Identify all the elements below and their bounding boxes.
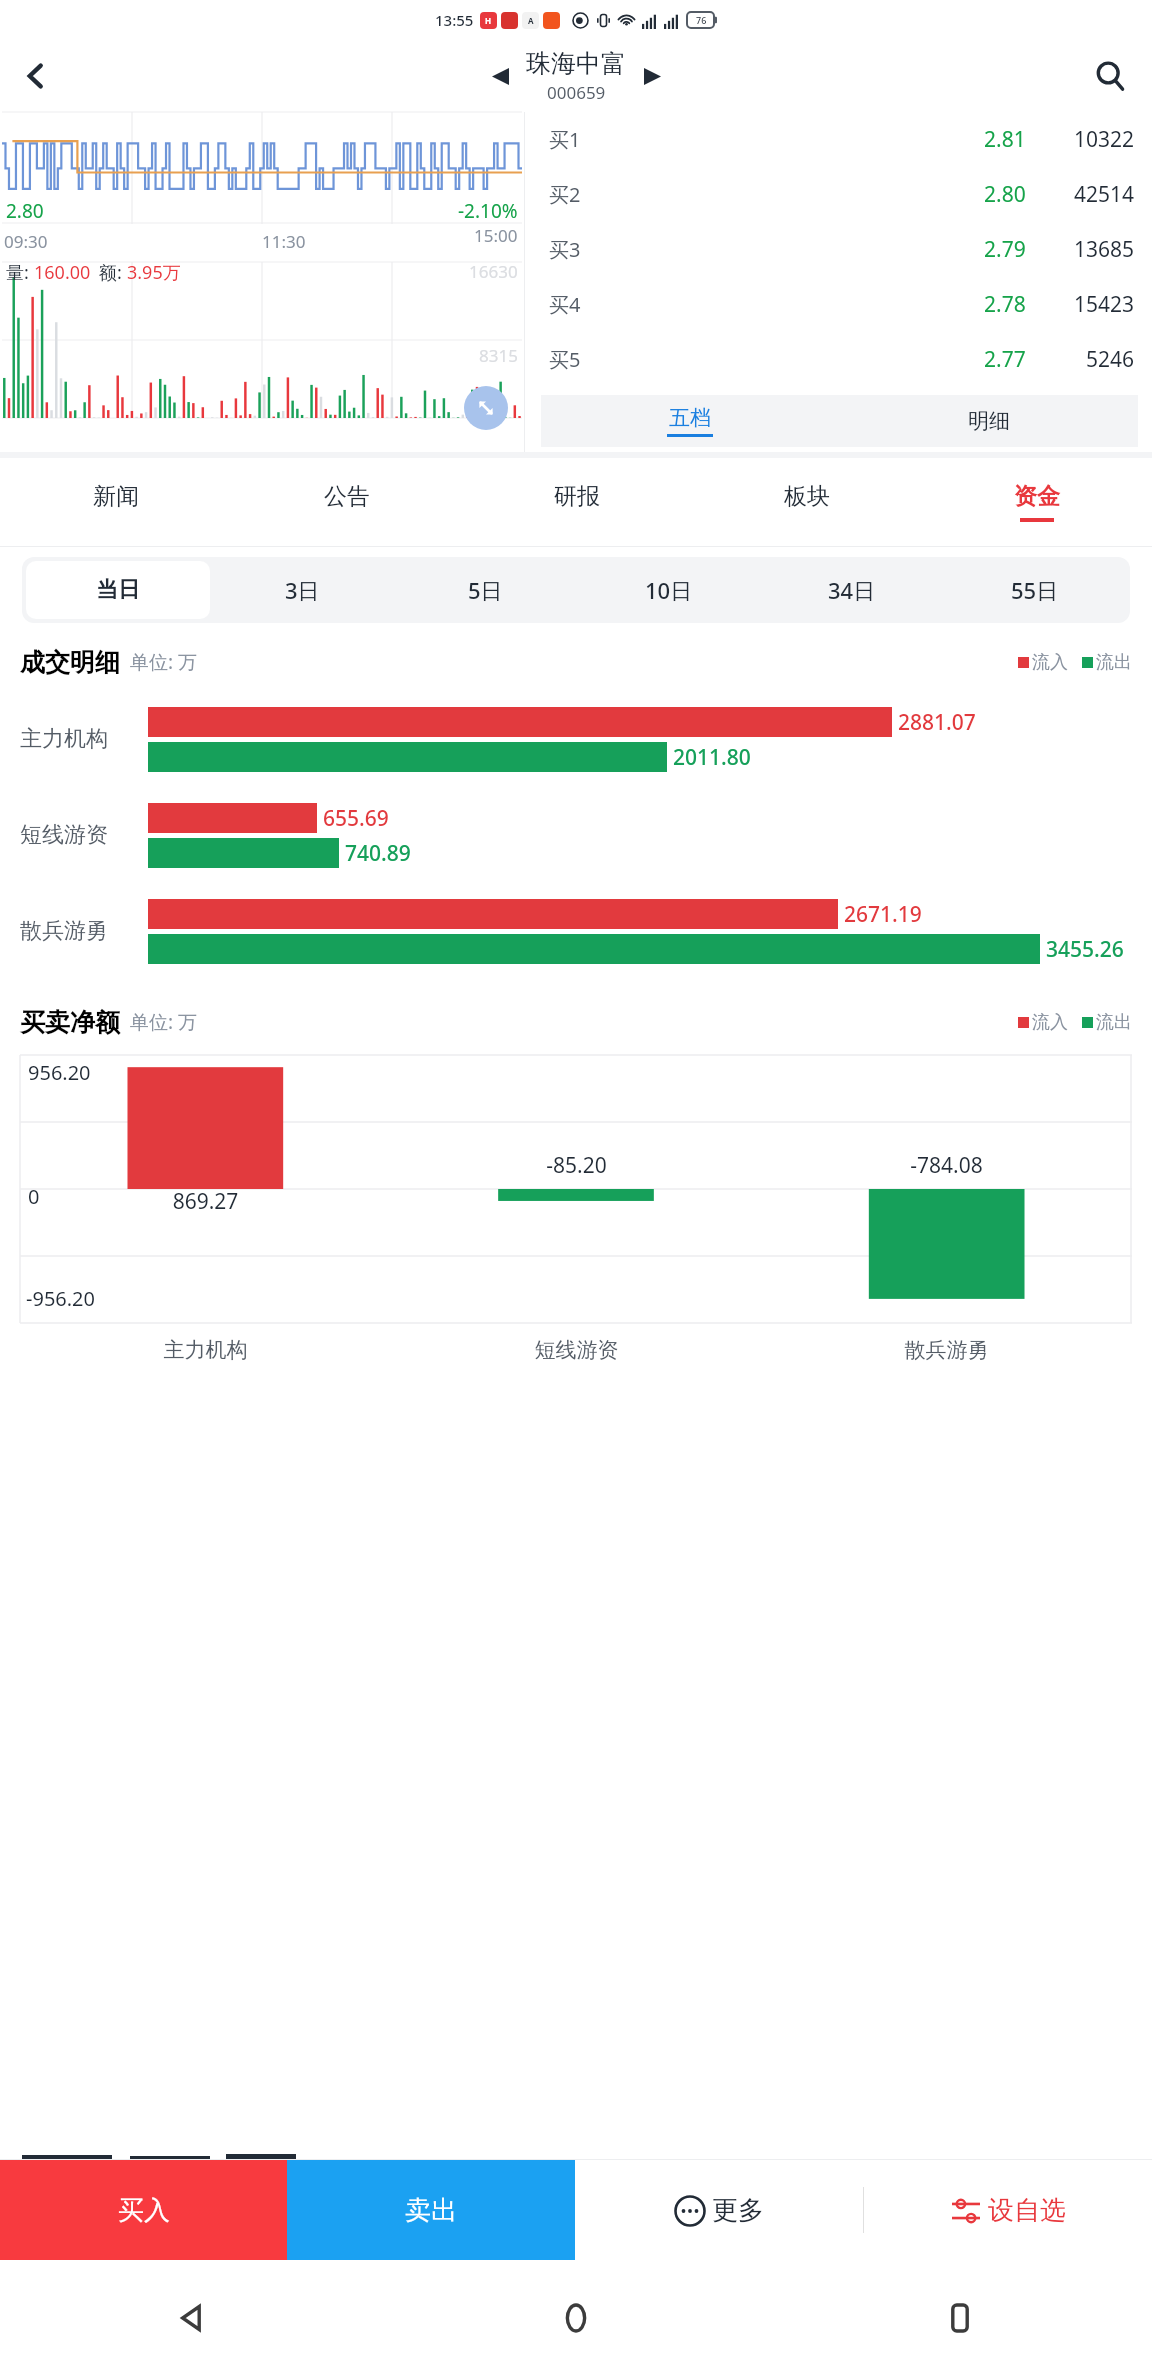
button[interactable]: Home	[384, 2260, 768, 2376]
button[interactable]: Expand chart	[464, 386, 508, 430]
staticText: 明细	[968, 408, 1010, 434]
staticText: 买5	[549, 346, 581, 373]
button[interactable]: 公告	[231, 458, 462, 546]
staticText: 量:	[6, 260, 34, 285]
staticText: 研报	[554, 482, 600, 511]
staticText: 2.80	[984, 180, 1026, 209]
staticText: 5日	[468, 575, 503, 605]
staticText: 000659	[547, 81, 606, 104]
staticText: 买1	[549, 126, 581, 153]
staticText: 买2	[549, 181, 581, 208]
staticText: 869.27	[20, 1187, 391, 1216]
button[interactable]: 短线游资	[20, 789, 1136, 881]
staticText: 成交明细	[20, 647, 120, 678]
button[interactable]: 3日	[210, 561, 394, 619]
staticText: 55日	[1011, 575, 1059, 605]
staticText: 2881.07	[898, 708, 976, 737]
staticText: 10322	[1048, 125, 1134, 154]
button[interactable]: 当日	[26, 561, 210, 619]
staticText: 0	[28, 1183, 40, 1210]
staticText: 主力机构	[20, 1337, 391, 1363]
staticText: 更多	[712, 2194, 764, 2227]
staticText: 公告	[324, 482, 370, 511]
staticText: 740.89	[345, 839, 411, 868]
button[interactable]: 新闻	[0, 458, 231, 546]
staticText: 15423	[1048, 290, 1134, 319]
button[interactable]: Back	[0, 2260, 384, 2376]
staticText: 2.79	[984, 235, 1026, 264]
button[interactable]: 买2	[549, 167, 1134, 222]
button[interactable]: Recents	[768, 2260, 1152, 2376]
staticText: 09:30	[4, 230, 48, 253]
button[interactable]: 买入	[0, 2160, 287, 2260]
button[interactable]: 买5	[549, 332, 1134, 387]
button[interactable]: 五档	[541, 395, 839, 447]
button[interactable]: 明细	[839, 395, 1138, 447]
staticText: -2.10%	[458, 198, 518, 224]
button[interactable]: 散兵游勇	[20, 885, 1136, 977]
button[interactable]: Next stock	[630, 54, 674, 98]
button[interactable]: 板块	[692, 458, 922, 546]
button[interactable]: 更多	[575, 2160, 863, 2260]
button[interactable]: Search	[1082, 48, 1138, 104]
staticText: 2.81	[984, 125, 1026, 154]
button[interactable]: 资金	[922, 458, 1152, 546]
staticText: 额:	[99, 260, 127, 285]
staticText: 买4	[549, 291, 581, 318]
button[interactable]: 34日	[760, 561, 943, 619]
button[interactable]: 10日	[577, 561, 760, 619]
staticText: 34日	[828, 575, 876, 605]
button[interactable]: 买4	[549, 277, 1134, 332]
staticText: 买入	[118, 2194, 170, 2227]
staticText: 珠海中富	[526, 48, 626, 79]
staticText: 2011.80	[673, 743, 751, 772]
button[interactable]: 研报	[462, 458, 692, 546]
staticText: 3.95万	[127, 260, 181, 285]
button[interactable]: 卖出	[287, 2160, 575, 2260]
staticText: 短线游资	[20, 821, 142, 849]
staticText: -956.20	[26, 1285, 95, 1312]
staticText: 卖出	[405, 2194, 457, 2227]
button[interactable]: 买1	[549, 112, 1134, 167]
staticText: 2.80	[6, 198, 44, 224]
button[interactable]: 买3	[549, 222, 1134, 277]
staticText: 655.69	[323, 804, 389, 833]
staticText: -784.08	[761, 1151, 1132, 1180]
staticText: 主力机构	[20, 725, 142, 753]
staticText: 2671.19	[844, 900, 922, 929]
button[interactable]: Previous stock	[478, 54, 522, 98]
staticText: 流出	[1096, 651, 1132, 674]
staticText: 板块	[784, 482, 830, 511]
staticText: 11:30	[262, 230, 306, 253]
staticText: 42514	[1048, 180, 1134, 209]
staticText: 流入	[1032, 651, 1068, 674]
staticText: 3日	[285, 575, 320, 605]
button[interactable]: 设自选	[864, 2160, 1152, 2260]
staticText: 16630	[469, 260, 518, 283]
button[interactable]: 主力机构	[20, 693, 1136, 785]
button[interactable]: 5日	[394, 561, 577, 619]
staticText: 散兵游勇	[761, 1337, 1132, 1363]
staticText: 单位: 万	[130, 1009, 198, 1035]
staticText: 5246	[1048, 345, 1134, 374]
staticText: 流出	[1096, 1011, 1132, 1034]
button[interactable]: Back	[8, 48, 64, 104]
staticText: 2.77	[984, 345, 1026, 374]
staticText: 8315	[479, 344, 518, 367]
staticText: 10日	[645, 575, 693, 605]
staticText: 956.20	[28, 1059, 91, 1086]
staticText: 买3	[549, 236, 581, 263]
staticText: 散兵游勇	[20, 917, 142, 945]
staticText: 13685	[1048, 235, 1134, 264]
staticText: 2.78	[984, 290, 1026, 319]
staticText: 13:55	[435, 10, 474, 30]
staticText: H	[485, 15, 492, 26]
staticText: 76	[696, 14, 707, 26]
staticText: 设自选	[988, 2194, 1066, 2227]
staticText: 新闻	[93, 482, 139, 511]
staticText: 流入	[1032, 1011, 1068, 1034]
staticText: A	[528, 15, 534, 26]
staticText: 买卖净额	[20, 1007, 120, 1038]
staticText: 15:00	[474, 224, 518, 247]
button[interactable]: 55日	[943, 561, 1126, 619]
